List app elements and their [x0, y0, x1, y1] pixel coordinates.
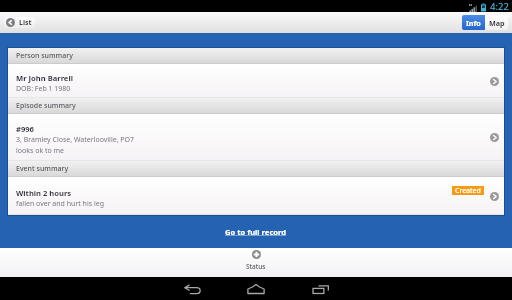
staticText: DOB: Feb 1 1980 — [16, 84, 71, 94]
staticText: Go to full record — [225, 227, 287, 237]
button[interactable]: List — [4, 17, 35, 28]
button[interactable]: Back — [179, 279, 205, 299]
staticText: Mr John Barrell — [16, 73, 73, 83]
staticText: Map — [489, 18, 505, 28]
staticText: fallen over and hurt his leg — [16, 199, 104, 209]
staticText: #996 — [16, 124, 34, 134]
staticText: 4:22 — [490, 0, 509, 12]
button[interactable]: Map — [485, 15, 508, 30]
other: Open details — [490, 133, 499, 142]
staticText: looks ok to me — [16, 146, 65, 156]
staticText: List — [19, 18, 32, 28]
staticText: Info — [466, 18, 481, 28]
button[interactable]: #996 — [8, 114, 504, 161]
staticText: Status — [246, 262, 266, 271]
other: Open details — [490, 192, 499, 201]
staticText: Event summary — [16, 164, 69, 174]
button[interactable]: Mr John Barrell — [8, 64, 504, 98]
button[interactable]: Home — [243, 279, 269, 299]
button[interactable]: Recents — [307, 279, 333, 299]
other: Open details — [490, 77, 499, 86]
button[interactable]: Info — [462, 15, 485, 30]
button[interactable]: Created — [452, 186, 484, 195]
button[interactable]: Go to full record — [217, 225, 295, 239]
button[interactable]: Within 2 hours — [8, 177, 504, 215]
staticText: Within 2 hours — [16, 188, 72, 198]
staticText: Created — [455, 186, 481, 195]
button[interactable]: Status — [228, 250, 284, 271]
staticText: 3, Bramley Close, Waterlooville, PO7 — [16, 135, 135, 145]
staticText: Episode summary — [16, 101, 76, 111]
staticText: Person summary — [16, 51, 73, 61]
